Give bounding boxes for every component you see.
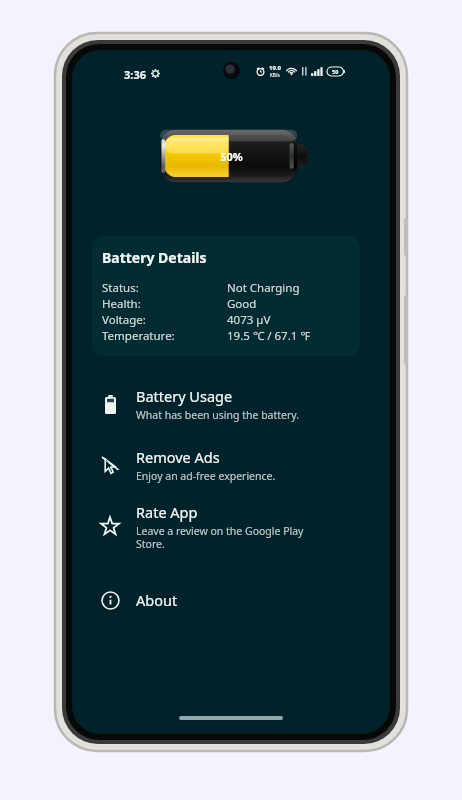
staticText: 19.5 ℃ / 67.1 ℉ bbox=[227, 328, 311, 344]
button[interactable]: About bbox=[84, 578, 378, 622]
staticText: 3:36 bbox=[124, 67, 146, 82]
staticText: Remove Ads bbox=[136, 447, 220, 467]
staticText: About bbox=[136, 590, 178, 610]
staticText: Enjoy an ad-free experience. bbox=[136, 469, 366, 483]
staticText: Voltage: bbox=[102, 312, 146, 328]
staticText: 19.0 bbox=[269, 64, 281, 72]
button[interactable]: Rate App bbox=[84, 500, 378, 552]
staticText: 50 bbox=[332, 68, 339, 75]
staticText: Temperature: bbox=[102, 328, 175, 344]
button[interactable]: Remove Ads bbox=[84, 439, 378, 491]
staticText: Battery Details bbox=[102, 248, 207, 267]
staticText: Leave a review on the Google Play Store. bbox=[136, 524, 308, 551]
staticText: Rate App bbox=[136, 502, 198, 522]
staticText: Status: bbox=[102, 280, 139, 296]
staticText: 4073 µV bbox=[227, 312, 271, 328]
staticText: 50% bbox=[220, 149, 243, 164]
staticText: Battery Usage bbox=[136, 386, 233, 406]
staticText: KB/s bbox=[270, 72, 280, 78]
staticText: What has been using the battery. bbox=[136, 408, 366, 422]
button[interactable]: Battery Usage bbox=[84, 378, 378, 430]
staticText: Health: bbox=[102, 296, 141, 312]
staticText: Not Charging bbox=[227, 280, 300, 296]
staticText: Good bbox=[227, 296, 257, 312]
